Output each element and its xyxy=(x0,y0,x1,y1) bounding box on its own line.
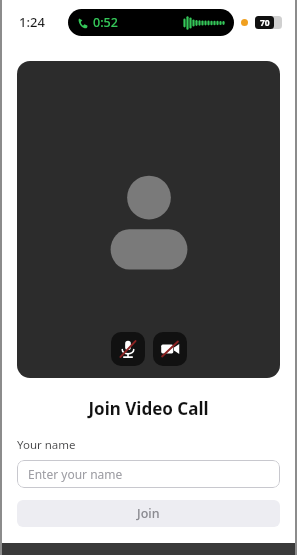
staticText: Join xyxy=(137,505,160,522)
staticText: 0:52 xyxy=(93,14,118,31)
staticText: 70 xyxy=(260,17,270,29)
button[interactable]: Turn on camera xyxy=(153,332,187,366)
button[interactable]: Join xyxy=(17,500,280,527)
staticText: 1:24 xyxy=(19,13,45,31)
staticText: Your name xyxy=(17,437,76,453)
staticText: Join Video Call xyxy=(2,397,295,420)
staticText: Enter your name xyxy=(28,466,123,482)
button[interactable]: Ongoing call 0:52 xyxy=(68,9,234,36)
button[interactable]: Enter your name xyxy=(17,460,280,488)
button[interactable]: Unmute microphone xyxy=(111,332,145,366)
